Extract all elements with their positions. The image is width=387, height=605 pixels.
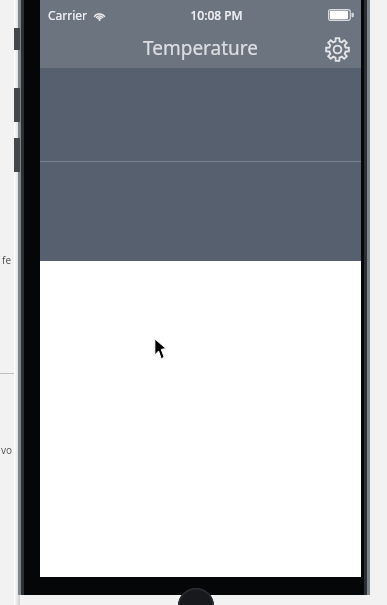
staticText: Temperature	[143, 35, 259, 61]
staticText: Carrier	[48, 7, 88, 23]
staticText: vo	[1, 443, 13, 457]
staticText: fe	[2, 253, 12, 267]
button[interactable]: Settings	[322, 34, 352, 64]
staticText: 10:08 PM	[190, 7, 243, 23]
